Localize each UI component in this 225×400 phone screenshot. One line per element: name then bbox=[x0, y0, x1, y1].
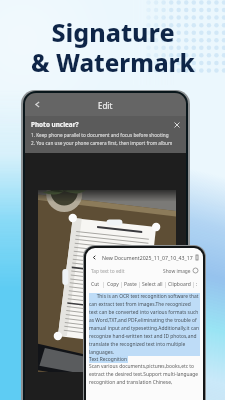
staticText: Text Recognition bbox=[89, 356, 128, 363]
staticText: Signature bbox=[51, 15, 175, 49]
staticText: 2. You can use your phone camera first, … bbox=[31, 140, 173, 146]
staticText: : bbox=[196, 281, 198, 288]
other: Back bbox=[91, 254, 98, 261]
staticText: Edit bbox=[98, 100, 113, 111]
staticText: New Document2025_11_07_10_43_17 bbox=[102, 254, 193, 261]
button[interactable]: Back bbox=[91, 251, 198, 264]
staticText: 1. Keep phone parallel to document and f… bbox=[31, 132, 169, 138]
staticText: Select all bbox=[142, 281, 163, 288]
button[interactable]: Paste bbox=[124, 281, 137, 288]
staticText: This is an OCR text recognition software… bbox=[89, 293, 200, 356]
staticText: Clipboard bbox=[168, 281, 191, 288]
button[interactable]: Copy bbox=[107, 281, 119, 288]
button[interactable]: Clipboard bbox=[168, 281, 191, 288]
button[interactable]: Photo unclear? bbox=[25, 116, 186, 153]
button[interactable]: Cut bbox=[91, 281, 100, 288]
button[interactable]: Edit bbox=[25, 93, 186, 116]
staticText: Copy bbox=[107, 281, 119, 288]
staticText: Show image bbox=[163, 268, 191, 275]
button[interactable]: Select all bbox=[142, 281, 163, 288]
staticText: Scan various documents,pictures,books,et… bbox=[89, 363, 200, 386]
staticText: Tap text to edit bbox=[91, 268, 125, 275]
staticText: Paste bbox=[124, 281, 137, 288]
staticText: & Watermark bbox=[31, 46, 195, 79]
button[interactable]: Close bbox=[174, 122, 180, 128]
staticText: Photo unclear? bbox=[31, 120, 79, 129]
staticText: Cut bbox=[91, 281, 100, 288]
button[interactable]: Back bbox=[33, 100, 42, 109]
